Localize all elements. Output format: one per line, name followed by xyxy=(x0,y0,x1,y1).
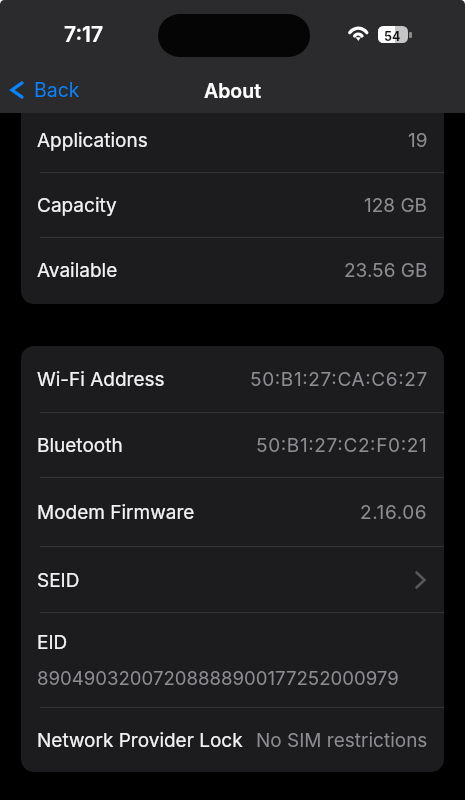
other: Wi-Fi xyxy=(346,24,371,42)
staticText: Wi-Fi Address xyxy=(37,368,165,391)
staticText: 23.56 GB xyxy=(344,259,428,282)
staticText: Applications xyxy=(37,129,148,152)
button[interactable]: Wi-Fi Address xyxy=(21,346,444,413)
staticText: Network Provider Lock xyxy=(37,729,243,752)
button[interactable]: Applications xyxy=(21,108,444,173)
button[interactable]: SEID xyxy=(21,547,444,613)
staticText: No SIM restrictions xyxy=(256,729,428,752)
staticText: 89049032007208888900177252000979 xyxy=(37,667,399,690)
staticText: SEID xyxy=(37,569,80,592)
button[interactable]: Available xyxy=(21,238,444,303)
staticText: 19 xyxy=(408,129,428,152)
staticText: 54 xyxy=(384,29,401,44)
staticText: Available xyxy=(37,259,118,282)
button[interactable]: Network Provider Lock xyxy=(21,708,444,772)
staticText: Back xyxy=(34,78,80,102)
staticText: 2.16.06 xyxy=(360,501,428,524)
staticText: EID xyxy=(37,631,68,654)
staticText: 7:17 xyxy=(64,22,104,47)
button[interactable]: Modem Firmware xyxy=(21,478,444,547)
staticText: About xyxy=(0,79,465,103)
button[interactable]: Bluetooth xyxy=(21,413,444,478)
staticText: Bluetooth xyxy=(37,434,123,457)
staticText: 50:B1:27:C2:F0:21 xyxy=(256,434,428,457)
staticText: Capacity xyxy=(37,194,117,217)
staticText: 50:B1:27:CA:C6:27 xyxy=(250,368,428,391)
button[interactable]: Back xyxy=(6,72,84,108)
button[interactable]: Capacity xyxy=(21,173,444,238)
staticText: Modem Firmware xyxy=(37,501,195,524)
button[interactable]: EID xyxy=(21,613,444,708)
staticText: 128 GB xyxy=(364,194,428,217)
